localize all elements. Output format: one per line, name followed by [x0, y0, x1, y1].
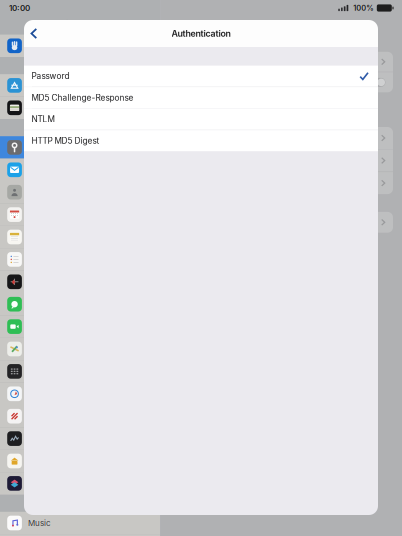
button[interactable]: [170, 172, 393, 194]
button[interactable]: HTTP MD5 Digest: [24, 130, 378, 151]
button[interactable]: Music: [0, 512, 160, 534]
button[interactable]: Messages: [0, 293, 160, 315]
button[interactable]: Notes: [0, 226, 160, 248]
button[interactable]: MD5 Challenge-Response: [24, 87, 378, 108]
button[interactable]: Mail: [0, 159, 160, 181]
staticText: NTLM: [32, 114, 55, 124]
staticText: HTTP MD5 Digest: [32, 136, 100, 146]
button[interactable]: Shortcuts: [0, 472, 160, 495]
button[interactable]: Calculator: [0, 360, 160, 383]
button[interactable]: FaceTime: [0, 315, 160, 338]
button[interactable]: Back: [24, 20, 45, 47]
button[interactable]: Reminders: [0, 248, 160, 271]
button[interactable]: [170, 150, 393, 172]
button[interactable]: Password: [24, 66, 378, 86]
staticText: Accessibility: [28, 41, 77, 51]
button[interactable]: Passwords: [0, 136, 160, 159]
button[interactable]: [170, 72, 393, 92]
staticText: Authentication: [171, 28, 230, 39]
button[interactable]: Stocks: [0, 427, 160, 450]
button[interactable]: [170, 52, 393, 72]
button[interactable]: App Store: [0, 74, 160, 97]
button[interactable]: [170, 212, 393, 233]
staticText: Password: [32, 71, 70, 81]
staticText: 10:00: [9, 3, 30, 13]
staticText: Passwords: [248, 19, 290, 28]
staticText: App Store: [28, 81, 67, 90]
button[interactable]: Contacts: [0, 181, 160, 203]
button[interactable]: Freeform: [0, 271, 160, 293]
button[interactable]: News: [0, 405, 160, 427]
staticText: Passwords: [28, 143, 68, 152]
button[interactable]: Safari: [0, 383, 160, 405]
button[interactable]: Home: [0, 450, 160, 472]
button[interactable]: [170, 127, 393, 149]
button[interactable]: Wallet: [0, 97, 160, 119]
button[interactable]: NTLM: [24, 109, 378, 130]
staticText: 100%: [353, 3, 373, 12]
button[interactable]: Accessibility: [0, 35, 160, 57]
staticText: Settings: [50, 19, 82, 28]
button[interactable]: Calendar: [0, 203, 160, 226]
button[interactable]: Maps: [0, 338, 160, 360]
staticText: MD5 Challenge-Response: [32, 93, 134, 103]
staticText: Music: [28, 518, 51, 528]
